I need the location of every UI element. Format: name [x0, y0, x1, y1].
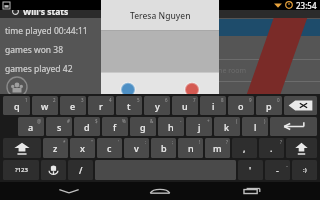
button[interactable]: :)	[292, 160, 317, 180]
staticText: c	[107, 142, 112, 154]
staticText: #	[67, 118, 70, 124]
button[interactable]: play	[104, 19, 320, 36]
button[interactable]: x	[70, 138, 95, 158]
staticText: w	[41, 100, 49, 112]
button[interactable]: Enter	[270, 117, 317, 136]
button[interactable]: ight leave soon though	[104, 82, 320, 104]
staticText: j	[198, 121, 201, 133]
button[interactable]: b	[151, 138, 176, 158]
button[interactable]: h	[158, 117, 184, 136]
staticText: games won 38	[5, 44, 64, 56]
staticText: o	[238, 100, 244, 112]
button[interactable]: .	[259, 138, 284, 158]
button[interactable]: r	[88, 96, 114, 115]
button[interactable]: k	[214, 117, 240, 136]
button[interactable]: p	[256, 96, 282, 115]
staticText: play	[118, 22, 136, 34]
button[interactable]: Player avatar	[6, 76, 28, 98]
button[interactable]: n	[178, 138, 203, 158]
staticText: e	[70, 100, 76, 112]
staticText: 8	[221, 97, 224, 103]
staticText: )	[264, 118, 266, 124]
staticText: g	[140, 121, 146, 133]
button[interactable]: v	[124, 138, 149, 158]
button[interactable]: w	[32, 96, 58, 115]
staticText: $	[95, 118, 98, 124]
button[interactable]: time played 00:44:11	[5, 25, 88, 37]
button[interactable]: '	[238, 160, 263, 180]
button[interactable]: Voice input	[41, 160, 66, 180]
button[interactable]: q	[3, 96, 30, 115]
staticText: ?123	[15, 166, 28, 174]
button[interactable]: Hide keyboard	[47, 182, 91, 200]
staticText: :	[145, 139, 147, 145]
button[interactable]: l	[242, 117, 268, 136]
staticText: k	[224, 121, 230, 133]
button[interactable]	[104, 36, 320, 60]
staticText: (	[236, 118, 238, 124]
button[interactable]: ,	[232, 138, 257, 158]
button[interactable]: Will's stats	[0, 5, 320, 18]
button[interactable]: ou? At least say hi to me! -at pone room	[104, 60, 320, 82]
staticText: y	[155, 100, 160, 112]
button[interactable]: a	[18, 117, 44, 136]
staticText: 5	[137, 97, 140, 103]
button[interactable]: g	[130, 117, 156, 136]
button[interactable]: c	[97, 138, 122, 158]
staticText: ?	[280, 139, 282, 145]
staticText: b	[161, 142, 167, 154]
staticText: ;	[172, 139, 174, 145]
staticText: &	[150, 118, 154, 124]
staticText: 2	[53, 97, 56, 103]
staticText: v	[134, 142, 139, 154]
staticText: 3	[81, 97, 84, 103]
button[interactable]: -	[265, 160, 290, 180]
button[interactable]: y	[144, 96, 170, 115]
staticText: u	[182, 100, 188, 112]
staticText: s	[57, 121, 62, 133]
staticText: -	[180, 118, 182, 124]
staticText: _	[286, 161, 288, 167]
staticText: q	[14, 100, 20, 112]
staticText: 9	[249, 97, 252, 103]
button[interactable]: j	[186, 117, 212, 136]
button[interactable]: Delete	[284, 96, 317, 115]
button[interactable]: games won 38	[5, 44, 64, 56]
button[interactable]: d	[74, 117, 100, 136]
button[interactable]: /	[68, 160, 93, 180]
staticText: .	[270, 142, 273, 154]
button[interactable]: games played 42	[5, 63, 73, 75]
button[interactable]: f	[102, 117, 128, 136]
staticText: 23:54	[296, 0, 317, 10]
button[interactable]: Accept	[119, 81, 137, 95]
button[interactable]: u	[172, 96, 198, 115]
button[interactable]: ?123	[3, 160, 39, 180]
staticText: 6	[165, 97, 168, 103]
button[interactable]: e	[60, 96, 86, 115]
button[interactable]: m	[205, 138, 230, 158]
button[interactable]: t	[116, 96, 142, 115]
staticText: ight leave soon though	[116, 88, 192, 98]
staticText: p	[266, 100, 272, 112]
button[interactable]: Recents	[229, 182, 273, 200]
staticText: l	[254, 121, 257, 133]
button[interactable]: Shift	[286, 138, 317, 158]
staticText: :)	[303, 166, 307, 174]
button[interactable]: z	[43, 138, 68, 158]
staticText: ?	[226, 139, 228, 145]
staticText: 7	[193, 97, 196, 103]
button[interactable]: i	[200, 96, 226, 115]
button[interactable]: Shift	[3, 138, 41, 158]
staticText: x	[80, 142, 85, 154]
button[interactable]: s	[46, 117, 72, 136]
staticText: h	[168, 121, 174, 133]
button[interactable]: Home	[138, 182, 182, 200]
button[interactable]: o	[228, 96, 254, 115]
staticText: 4	[109, 97, 112, 103]
staticText: !	[199, 139, 201, 145]
staticText: '	[249, 164, 252, 176]
staticText: Will's stats	[23, 6, 69, 18]
staticText: d	[84, 121, 90, 133]
button[interactable]: Decline	[183, 81, 201, 95]
